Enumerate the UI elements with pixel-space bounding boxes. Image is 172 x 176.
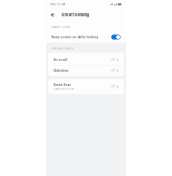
staticText: Quickly scan QR codes [53,88,74,90]
staticText: Off [111,58,115,61]
button[interactable]: Keep screen on while looking [46,33,126,41]
staticText: Air scroll [53,58,67,62]
button[interactable]: Air scroll [48,55,124,65]
staticText: Mon, 10 Mar [50,3,65,6]
button[interactable]: Grab/drop [48,65,124,76]
staticText: SMART VIEW [51,26,69,29]
staticText: Smart Scan [53,83,71,87]
staticText: Grab/drop [53,69,68,72]
staticText: Off [111,69,115,72]
button[interactable]: Smart Scan [48,79,124,94]
staticText: Smart Sensing [62,12,89,17]
staticText: Off [111,85,115,88]
staticText: AIR GESTURES [51,47,73,50]
staticText: Keep screen on while looking [51,35,98,39]
button[interactable]: Back [49,11,57,18]
